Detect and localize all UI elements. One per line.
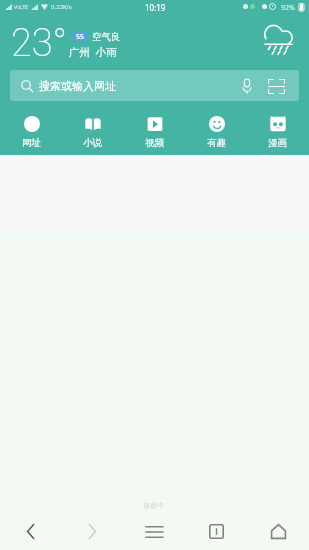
staticText: 加载中 [143, 501, 164, 510]
button[interactable]: Scan QR code [266, 76, 286, 96]
button[interactable]: Voice search [237, 76, 257, 96]
button[interactable]: Menu [123, 513, 185, 550]
staticText: 广州 小雨 [69, 45, 117, 59]
staticText: 空气良 [92, 31, 121, 43]
button[interactable]: 有趣 [186, 116, 247, 149]
staticText: VoLTE [14, 4, 29, 11]
staticText: 92% [281, 3, 295, 13]
button[interactable]: 漫画 [247, 116, 308, 149]
button[interactable]: 视频 [124, 116, 185, 149]
staticText: 小说 [83, 137, 102, 149]
button[interactable]: 网址 [1, 116, 62, 149]
staticText: 漫画 [268, 137, 287, 149]
staticText: 有趣 [207, 137, 226, 149]
staticText: 网址 [22, 137, 41, 149]
button[interactable]: Forward [61, 513, 123, 550]
staticText: 23° [11, 21, 68, 66]
staticText: 10:19 [145, 2, 166, 13]
button[interactable]: 搜索或输入网址 [10, 70, 299, 101]
button[interactable]: Home [247, 513, 309, 550]
staticText: 55 [76, 32, 85, 41]
button[interactable]: Back [0, 513, 61, 550]
staticText: 搜索或输入网址 [39, 79, 116, 93]
button[interactable]: Tabs [185, 513, 247, 550]
button[interactable]: 小说 [62, 116, 123, 149]
staticText: 0.23K/s [51, 3, 72, 11]
staticText: 视频 [145, 137, 164, 149]
